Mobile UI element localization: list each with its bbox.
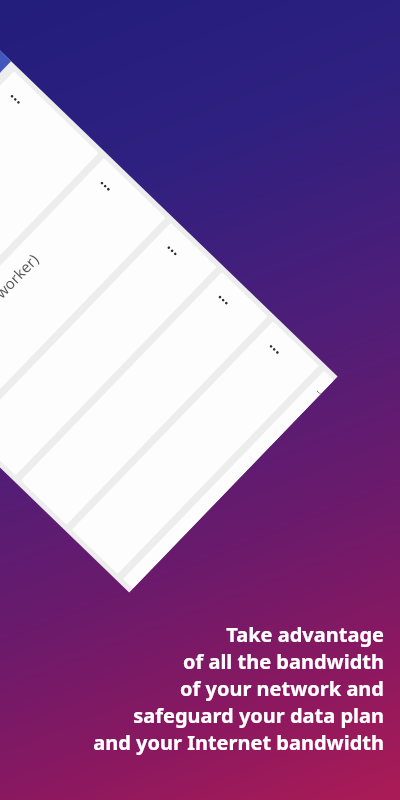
button[interactable]: More options <box>0 222 217 476</box>
staticText: John (co-worker) <box>0 249 43 346</box>
button[interactable]: More options <box>207 285 238 316</box>
button[interactable]: More options <box>156 235 187 266</box>
button[interactable]: John (co-worker) <box>0 158 166 426</box>
staticText: safeguard your data plan <box>133 702 384 729</box>
staticText: of all the bandwidth <box>182 648 384 675</box>
button[interactable]: More options <box>0 84 30 115</box>
button[interactable]: More options <box>89 171 120 202</box>
button[interactable]: Dad's phone <box>0 71 99 362</box>
staticText: Take advantage <box>226 621 384 648</box>
button[interactable]: More options <box>71 321 319 574</box>
staticText: of your network and <box>180 675 384 702</box>
button[interactable]: More options <box>258 334 289 365</box>
button[interactable]: More options <box>123 370 334 589</box>
button[interactable]: More options <box>20 272 268 525</box>
button[interactable]: TEMPORARY <box>0 22 11 133</box>
button[interactable]: More options <box>309 383 328 402</box>
staticText: and your Internet bandwidth <box>93 729 384 756</box>
